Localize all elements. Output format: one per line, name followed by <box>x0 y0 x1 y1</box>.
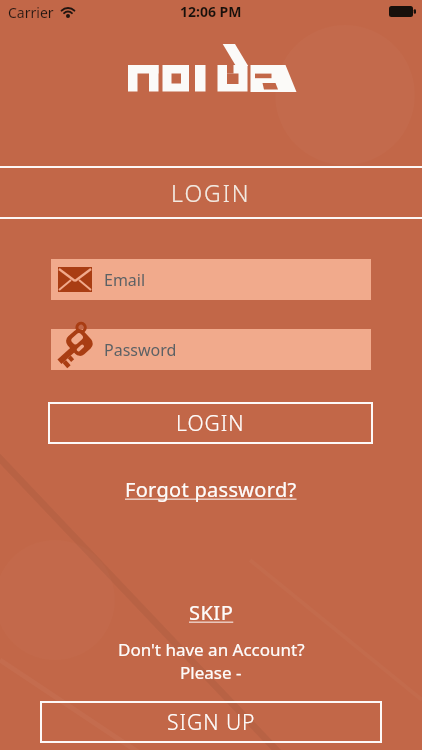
staticText: Password <box>104 339 177 361</box>
button[interactable]: Email <box>51 259 371 300</box>
button[interactable]: LOGIN <box>48 402 373 444</box>
staticText: LOGIN <box>176 409 245 438</box>
button[interactable]: Forgot password? <box>125 476 297 503</box>
button[interactable]: SIGN UP <box>40 701 382 743</box>
button[interactable]: SKIP <box>189 599 234 626</box>
staticText: Please - <box>180 661 242 684</box>
staticText: SIGN UP <box>167 708 256 737</box>
staticText: 12:06 PM <box>180 2 242 21</box>
staticText: Don't have an Account? <box>118 638 305 661</box>
staticText: Email <box>104 269 146 291</box>
button[interactable]: Password <box>51 329 371 370</box>
staticText: Carrier <box>8 3 54 22</box>
staticText: LOGIN <box>171 177 251 208</box>
